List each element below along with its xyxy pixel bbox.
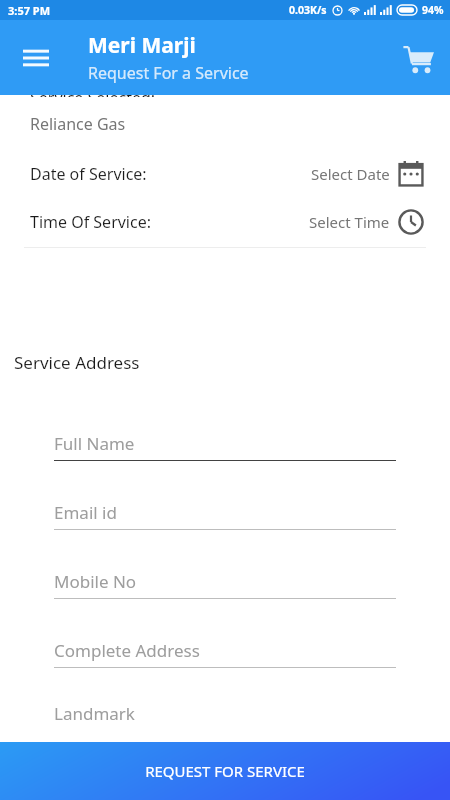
staticText: Landmark [54,702,135,725]
staticText: Email id [54,501,117,524]
staticText: Reliance Gas [30,113,126,135]
button[interactable]: Mobile No [54,553,396,622]
staticText: Full Name [54,432,135,455]
staticText: 0.03K/s [289,3,327,17]
button[interactable]: Open navigation menu [14,36,58,80]
staticText: Service Address [14,351,140,374]
staticText: Mobile No [54,570,137,593]
staticText: Select Time [309,212,390,232]
staticText: 94% [422,3,444,17]
staticText: Service Selected: [30,95,156,97]
staticText: Request For a Service [88,62,249,84]
button[interactable]: Email id [54,484,396,553]
staticText: Date of Service: [30,163,147,185]
button[interactable]: REQUEST FOR SERVICE [0,742,450,800]
staticText: Meri Marji [88,31,196,60]
button[interactable]: Landmark [54,691,396,725]
button[interactable]: Time Of Service: [12,201,438,243]
button[interactable]: Date of Service: [12,153,438,195]
button[interactable]: Cart [394,34,442,82]
staticText: REQUEST FOR SERVICE [145,761,305,781]
staticText: 3:57 PM [8,3,51,18]
staticText: Complete Address [54,639,200,662]
button[interactable]: Full Name [54,415,396,484]
staticText: Select Date [311,164,390,184]
staticText: Time Of Service: [30,211,151,233]
button[interactable]: Complete Address [54,622,396,691]
